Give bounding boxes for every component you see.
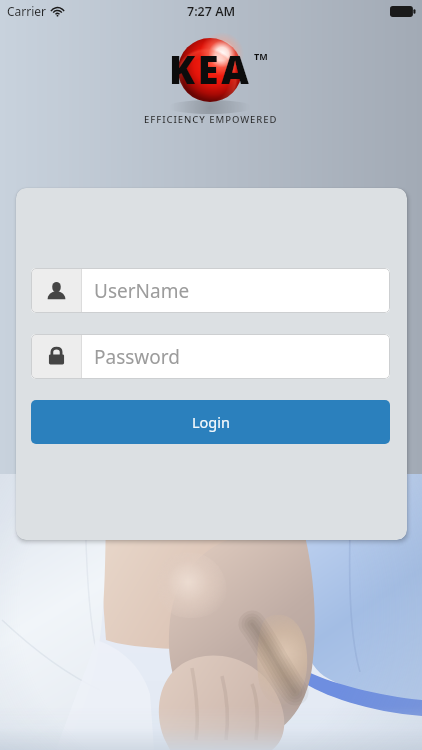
button[interactable]: Password bbox=[31, 334, 390, 379]
staticText: EFFICIENCY EMPOWERED bbox=[144, 113, 278, 126]
button[interactable]: Login bbox=[31, 400, 390, 444]
button[interactable]: UserName bbox=[31, 268, 390, 313]
staticText: KEA bbox=[169, 43, 252, 95]
staticText: Carrier bbox=[7, 3, 47, 19]
staticText: 7:27 AM bbox=[187, 3, 236, 20]
staticText: Password bbox=[94, 344, 180, 370]
staticText: TM bbox=[254, 50, 268, 62]
staticText: UserName bbox=[94, 278, 190, 304]
staticText: Login bbox=[192, 412, 230, 432]
